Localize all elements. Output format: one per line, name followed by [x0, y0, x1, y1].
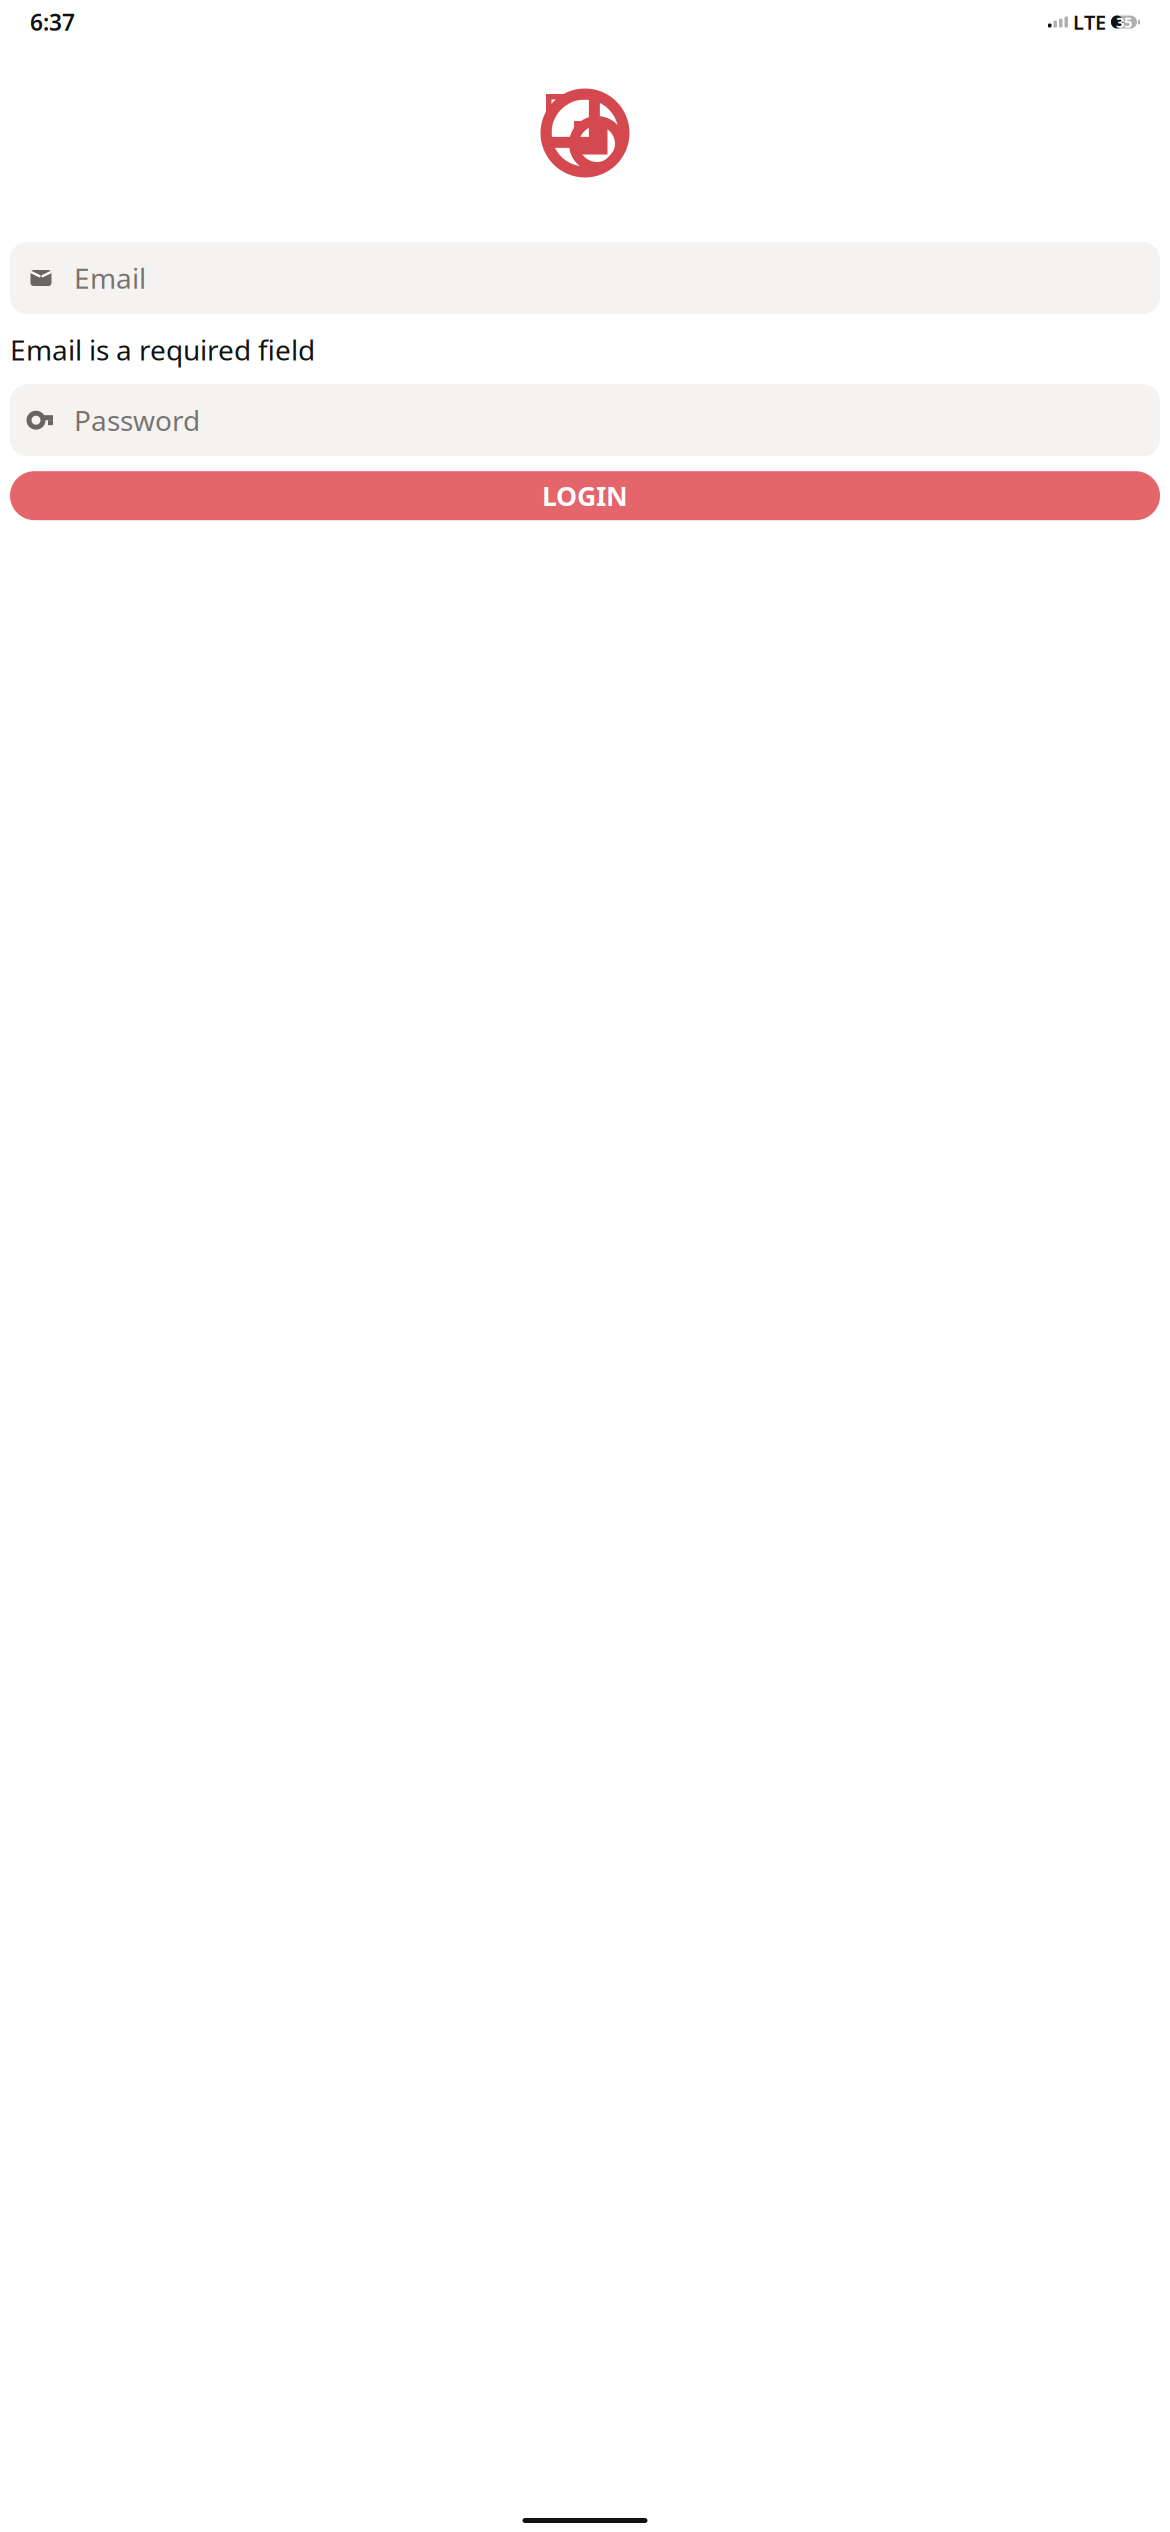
staticText: LTE [1073, 9, 1106, 35]
staticText: 6:37 [30, 7, 75, 37]
staticText: Email is a required field [10, 331, 315, 368]
button[interactable]: Email [10, 242, 1160, 314]
staticText: 35 [1116, 12, 1132, 32]
staticText: Email [74, 259, 146, 297]
button[interactable]: LOGIN [10, 471, 1160, 520]
staticText: LOGIN [542, 478, 628, 513]
button[interactable]: Password [10, 384, 1160, 456]
staticText: Password [74, 402, 200, 439]
